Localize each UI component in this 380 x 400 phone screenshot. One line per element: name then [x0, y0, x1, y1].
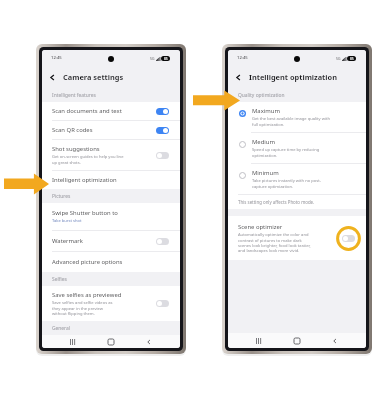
staticText: Take burst shot	[52, 218, 169, 224]
button[interactable]: Intelligent optimization	[42, 171, 180, 189]
button[interactable]: Toggle	[156, 152, 169, 159]
staticText: Medium	[252, 138, 275, 146]
button[interactable]: Shot suggestions	[42, 140, 180, 170]
button[interactable]: Save selfies as previewed	[42, 286, 180, 321]
staticText: Speed up capture time by reducing optimi…	[252, 147, 333, 158]
button[interactable]: Home	[290, 334, 304, 348]
staticText: Swipe Shutter button to	[52, 209, 118, 217]
staticText: General	[52, 325, 71, 332]
staticText: Automatically optimize the color and con…	[238, 232, 313, 253]
staticText: Get the best available image quality wit…	[252, 116, 333, 127]
button[interactable]: Medium	[228, 133, 366, 163]
staticText: 12:45	[237, 55, 248, 61]
staticText: Take pictures instantly with no post-cap…	[252, 178, 333, 189]
staticText: Save selfies and selfie videos as they a…	[52, 300, 118, 316]
button[interactable]: Toggle	[156, 238, 169, 245]
button[interactable]: Maximum	[228, 102, 366, 132]
staticText: Shot suggestions	[52, 145, 100, 153]
staticText: Scan documents and text	[52, 107, 122, 115]
staticText: Quality optimization	[238, 92, 285, 99]
button[interactable]: Minimum	[228, 164, 366, 194]
button[interactable]: Toggle	[156, 300, 169, 307]
button[interactable]: Scene optimizer	[228, 216, 366, 260]
staticText: Intelligent optimization	[52, 176, 117, 184]
button[interactable]: Back	[142, 335, 156, 348]
button[interactable]: Recents	[66, 335, 80, 348]
staticText: Advanced picture options	[52, 258, 123, 266]
button[interactable]: Recents	[252, 334, 266, 348]
staticText: 12:45	[51, 55, 62, 61]
button[interactable]: Scan QR codes	[42, 121, 180, 139]
staticText: Get on-screen guides to help you line up…	[52, 154, 126, 165]
staticText: 5G	[336, 56, 341, 61]
staticText: Scene optimizer	[238, 223, 283, 231]
staticText: Maximum	[252, 107, 280, 115]
staticText: 5G	[150, 56, 155, 61]
button[interactable]: Scan documents and text	[42, 102, 180, 120]
staticText: Selfies	[52, 276, 67, 283]
staticText: Intelligent features	[52, 92, 96, 99]
staticText: Intelligent optimization	[249, 72, 337, 82]
staticText: Watermark	[52, 237, 83, 245]
staticText: This setting only affects Photo mode.	[238, 199, 315, 205]
staticText: 85	[350, 57, 354, 61]
button[interactable]: Toggle	[156, 108, 169, 115]
staticText: Minimum	[252, 169, 279, 177]
button[interactable]: Home	[104, 335, 118, 348]
staticText: Camera settings	[63, 72, 124, 82]
button[interactable]: Back	[232, 71, 245, 84]
button[interactable]: Advanced picture options	[42, 252, 180, 272]
button[interactable]: Swipe Shutter button to	[42, 203, 180, 230]
staticText: Pictures	[52, 193, 71, 200]
button[interactable]: Toggle	[156, 127, 169, 134]
button[interactable]: Toggle	[342, 235, 355, 242]
staticText: Save selfies as previewed	[52, 291, 122, 299]
staticText: Scan QR codes	[52, 126, 93, 134]
staticText: 85	[164, 57, 168, 61]
button[interactable]: Back	[328, 334, 342, 348]
button[interactable]: Back	[46, 71, 59, 84]
button[interactable]: Watermark	[42, 231, 180, 251]
